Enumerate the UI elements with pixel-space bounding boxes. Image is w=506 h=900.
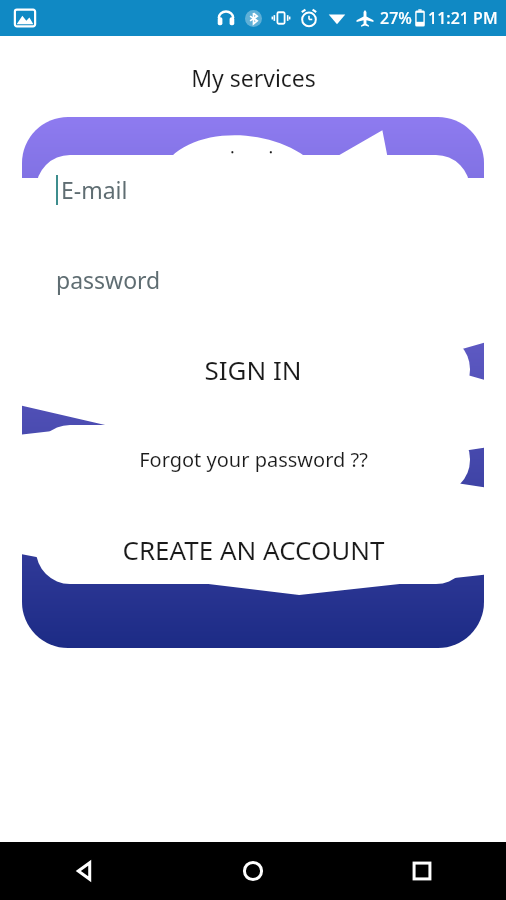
staticText: CREATE AN ACCOUNT (122, 532, 385, 567)
button[interactable]: CREATE AN ACCOUNT (36, 515, 470, 584)
staticText: Forgot your password ?? (139, 446, 368, 473)
staticText: sign in (219, 143, 288, 173)
staticText: SIGN IN (204, 352, 302, 387)
button[interactable]: Forgot your password ?? (36, 425, 470, 494)
button[interactable]: password (36, 245, 470, 314)
staticText: 27% (380, 7, 412, 29)
button[interactable]: Back (0, 842, 168, 900)
staticText: password (56, 264, 161, 295)
button[interactable]: Home (168, 842, 337, 900)
button[interactable]: SIGN IN (36, 335, 470, 404)
button[interactable]: Recent apps (337, 842, 506, 900)
staticText: 11:21 PM (428, 7, 498, 29)
button[interactable]: E-mail (36, 155, 470, 224)
staticText: E-mail (61, 174, 128, 205)
staticText: My services (191, 62, 316, 93)
